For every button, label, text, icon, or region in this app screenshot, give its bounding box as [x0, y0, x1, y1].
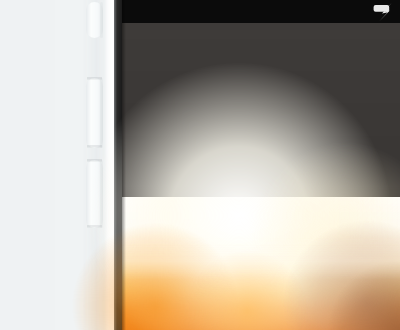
button[interactable] — [122, 197, 400, 330]
button[interactable] — [122, 23, 400, 197]
other: Status icons — [370, 1, 400, 21]
